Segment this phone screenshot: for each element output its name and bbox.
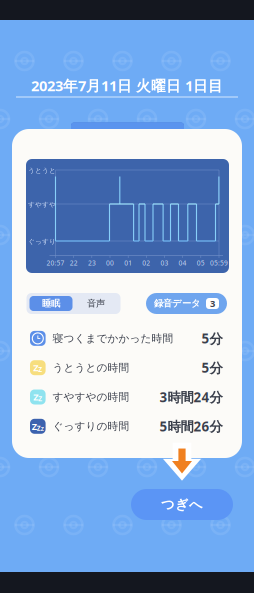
staticText: Z [41, 425, 44, 432]
button[interactable]: Z [30, 382, 222, 412]
staticText: Z [38, 394, 42, 403]
staticText: うとうとの時間 [53, 361, 130, 374]
staticText: ぐっすり [28, 237, 56, 246]
staticText: すやすや [28, 200, 56, 209]
button[interactable]: 睡眠 [29, 296, 72, 311]
staticText: 5分 [201, 329, 222, 347]
staticText: 23 [88, 259, 96, 267]
staticText: Z [33, 361, 38, 374]
button[interactable]: 音声 [74, 296, 117, 311]
staticText: ぐっすりの時間 [53, 420, 130, 433]
staticText: 01 [124, 259, 132, 267]
staticText: Z [32, 420, 37, 432]
staticText: 3時間24分 [159, 388, 222, 406]
staticText: 睡眠 [42, 298, 60, 309]
staticText: 00 [106, 259, 114, 267]
staticText: 5分 [201, 359, 222, 376]
button[interactable]: Z [30, 412, 222, 441]
staticText: 04 [179, 259, 187, 267]
staticText: 2023年7月11日 火曜日 1日目 [31, 76, 223, 95]
staticText: つぎへ [161, 496, 203, 513]
staticText: 22 [70, 259, 78, 267]
button[interactable]: Z [30, 353, 222, 382]
staticText: 寝つくまでかかった時間 [53, 332, 174, 345]
staticText: 5時間26分 [159, 417, 222, 435]
button[interactable]: 録音データ [146, 293, 227, 314]
staticText: 02 [142, 259, 150, 267]
staticText: すやすやの時間 [53, 390, 130, 403]
staticText: 05 [197, 259, 205, 267]
staticText: 05:59 [210, 259, 228, 267]
button[interactable]: つぎへ [131, 489, 233, 520]
staticText: うとうと [28, 166, 56, 175]
staticText: 音声 [87, 298, 105, 309]
staticText: Z [38, 365, 42, 374]
staticText: 03 [160, 259, 168, 267]
staticText: 20:57 [47, 259, 65, 267]
staticText: 録音データ [154, 298, 201, 309]
button[interactable]: 寝つくまでかかった時間 [30, 324, 222, 353]
staticText: Z [37, 424, 41, 432]
staticText: Z [33, 391, 38, 403]
staticText: 3 [210, 297, 215, 310]
